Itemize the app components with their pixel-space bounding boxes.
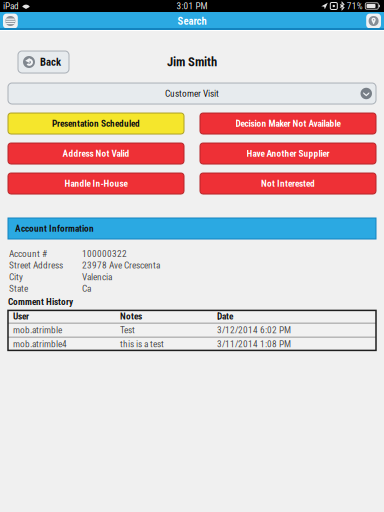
button[interactable]: Address Not Valid [8,143,184,164]
staticText: 71% [347,0,363,11]
staticText: Address Not Valid [62,148,129,159]
staticText: User [13,311,29,322]
staticText: State [9,283,28,294]
staticText: Customer Visit [165,88,219,99]
staticText: mob.atrimble [13,325,62,336]
staticText: Account # [9,248,47,259]
staticText: 3/11/2014 1:08 PM [217,339,291,350]
button[interactable]: Back [18,51,69,73]
button[interactable]: Have Another Supplier [200,143,376,164]
staticText: 3/12/2014 6:02 PM [217,325,291,336]
staticText: Notes [120,311,142,322]
staticText: 3:01 PM [176,0,207,11]
staticText: Comment History [8,296,73,307]
button[interactable]: Nearby [366,14,381,28]
button[interactable]: Not Interested [200,173,376,194]
staticText: Handle In-House [64,178,127,189]
staticText: mob.atrimble4 [13,339,67,350]
button[interactable]: Customer Visit [8,83,376,104]
button[interactable]: Handle In-House [8,173,184,194]
staticText: Date [217,311,233,322]
button[interactable]: Menu [3,14,18,28]
staticText: Have Another Supplier [246,148,329,159]
staticText: Jim Smith [167,55,217,69]
staticText: Street Address [9,260,63,271]
button[interactable]: Decision Maker Not Available [200,113,376,134]
staticText: Ca [82,283,91,294]
staticText: this is a test [120,339,164,350]
staticText: Presentation Scheduled [52,118,140,129]
staticText: Search [177,15,206,27]
staticText: Decision Maker Not Available [235,118,340,129]
staticText: 23978 Ave Crescenta [82,260,160,271]
staticText: Valencia [82,271,112,282]
staticText: Back [40,56,61,68]
staticText: Test [120,325,135,336]
staticText: iPad [3,0,19,11]
staticText: 100000322 [82,248,127,259]
staticText: Account Information [15,223,94,234]
staticText: Not Interested [261,178,315,189]
button[interactable]: Presentation Scheduled [8,113,184,134]
staticText: City [9,271,23,282]
